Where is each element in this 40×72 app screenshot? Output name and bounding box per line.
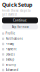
button[interactable]: Payment — [0, 47, 40, 52]
staticText: Security — [6, 63, 16, 66]
staticText: Payment — [6, 47, 17, 51]
button[interactable]: Advanced — [0, 67, 40, 72]
staticText: get started — [2, 13, 17, 16]
button[interactable]: Devices — [0, 52, 40, 57]
staticText: Profile — [6, 32, 16, 35]
staticText: Skip for now — [11, 25, 28, 29]
button[interactable]: Backup — [0, 57, 40, 62]
staticText: Advanced — [6, 68, 19, 72]
button[interactable]: Profile — [0, 31, 40, 36]
staticText: Finish these steps to — [2, 9, 31, 12]
button[interactable]: Skip for now — [2, 24, 38, 29]
staticText: Continue — [13, 19, 27, 22]
staticText: Devices — [6, 53, 15, 56]
staticText: Quick Setup — [2, 1, 32, 8]
staticText: Notifications — [6, 37, 23, 40]
button[interactable]: Continue — [2, 17, 38, 23]
button[interactable]: Privacy — [0, 41, 40, 47]
staticText: Backup — [6, 58, 15, 61]
button[interactable]: Notifications — [0, 36, 40, 41]
button[interactable]: Security — [0, 62, 40, 67]
staticText: Privacy — [6, 42, 14, 46]
